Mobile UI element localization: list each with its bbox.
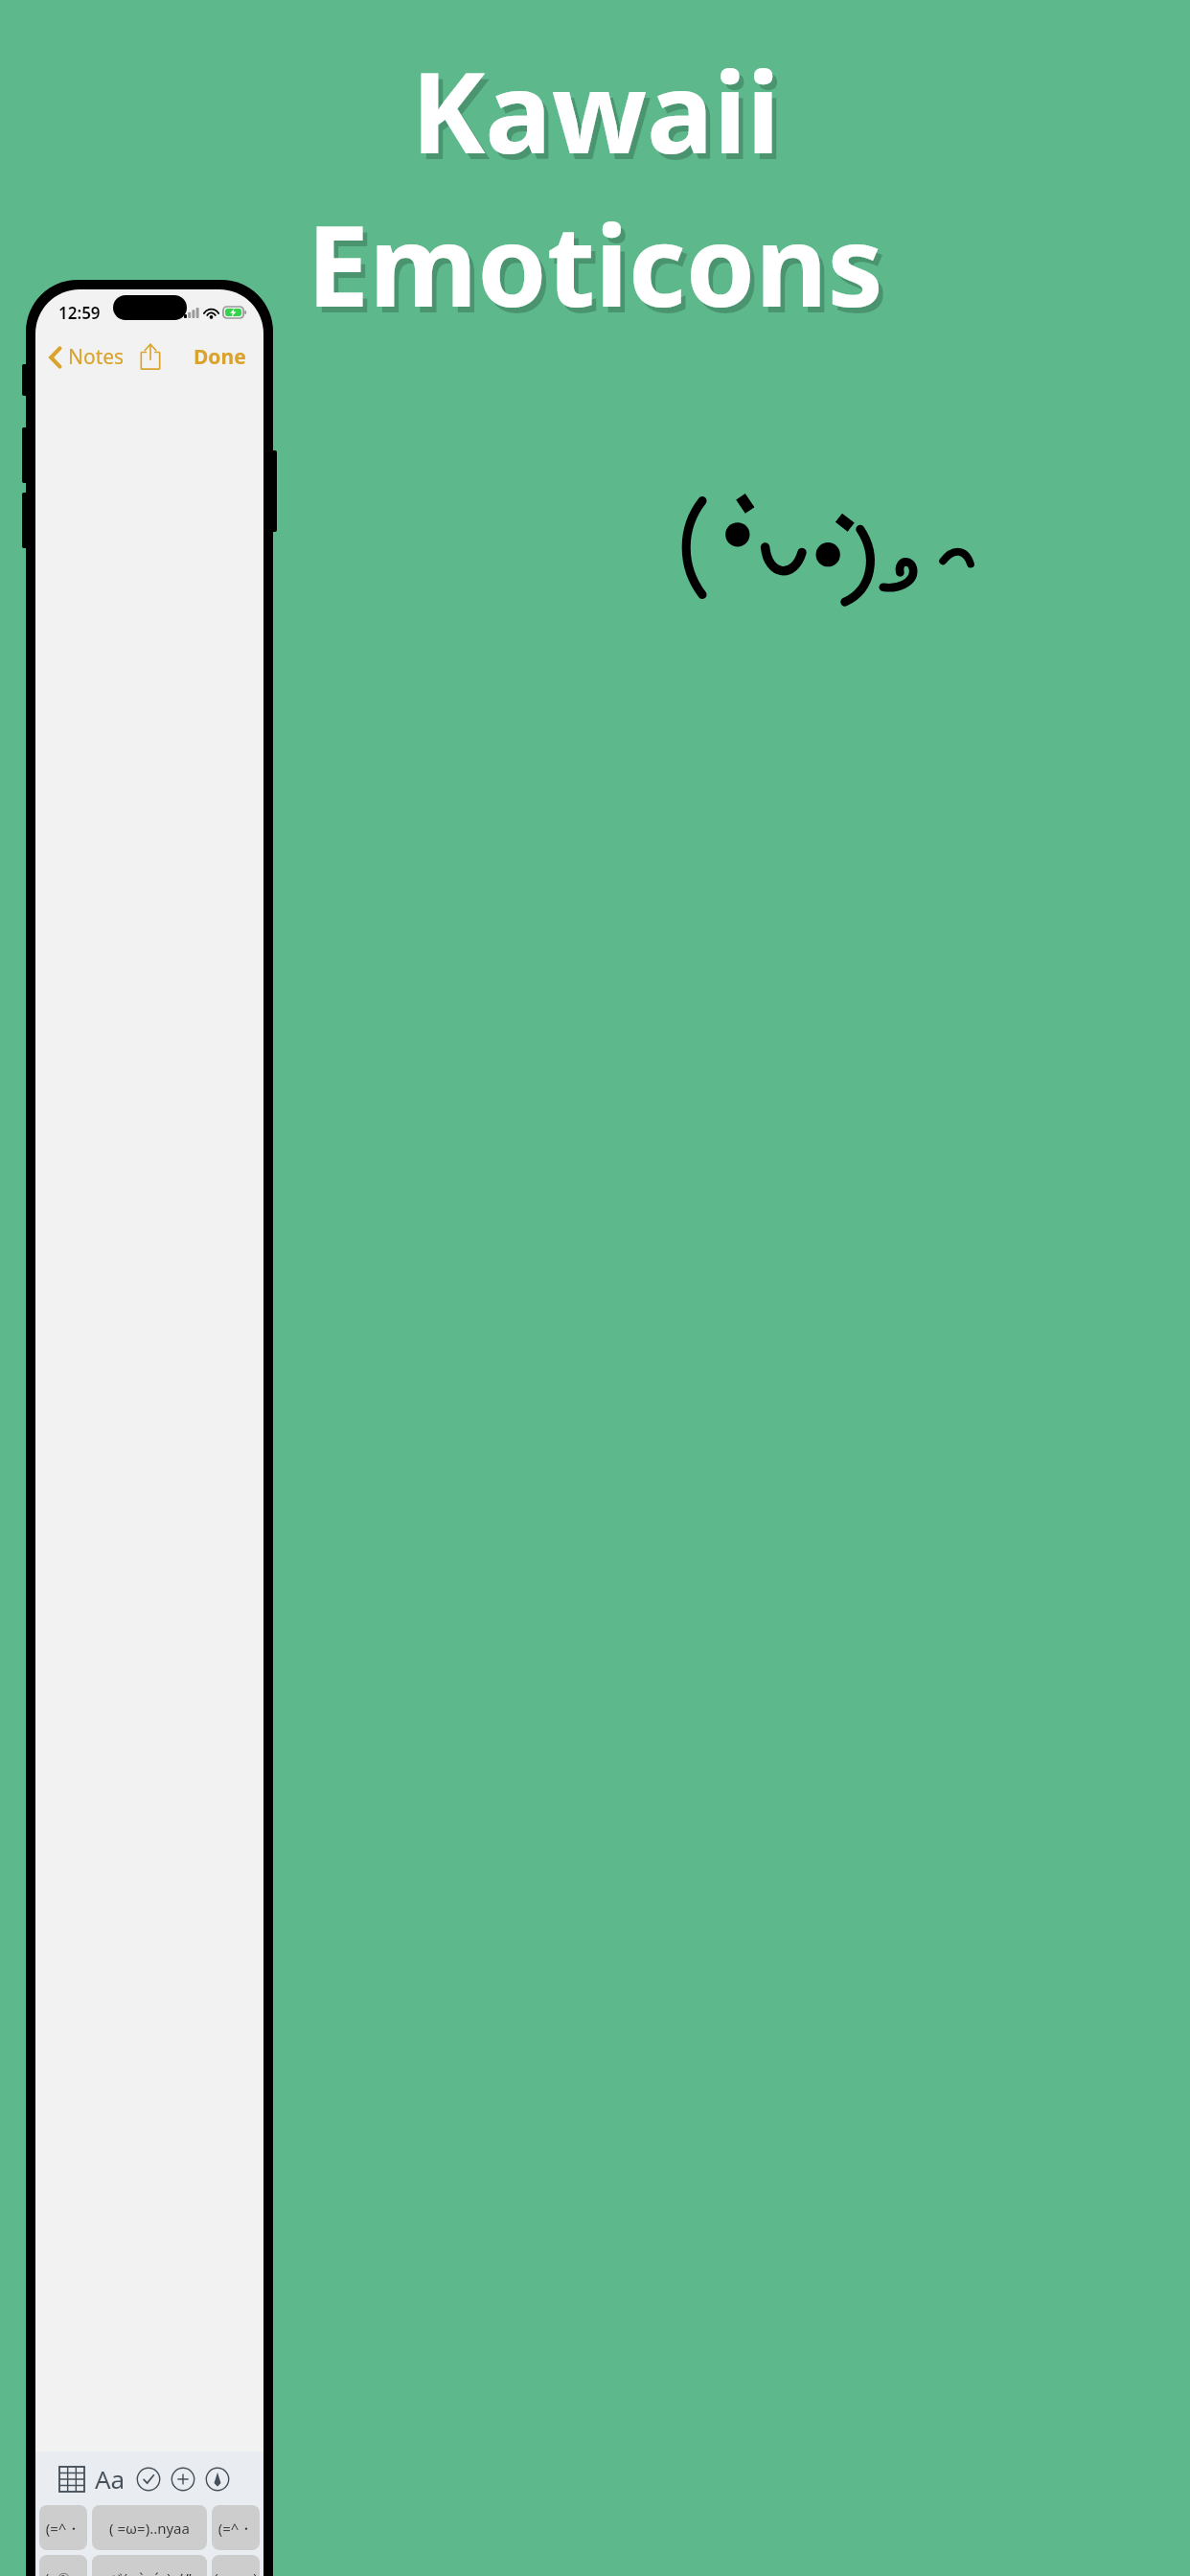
button[interactable]: ( =ω=)..nyaa: [92, 2505, 207, 2550]
staticText: (=^・ω・^=): [39, 2518, 87, 2538]
button[interactable]: Done: [190, 337, 250, 377]
staticText: Emoticons: [311, 194, 888, 345]
button[interactable]: Format: [89, 2456, 131, 2501]
staticText: 12:59: [58, 302, 101, 324]
button[interactable]: Table: [55, 2462, 89, 2496]
button[interactable]: Checklist: [131, 2462, 166, 2496]
staticText: ( =ω=)..nyaa: [109, 2518, 190, 2538]
staticText: Emoticons: [307, 188, 883, 339]
button[interactable]: Notes: [35, 337, 132, 377]
button[interactable]: ヾ(= `ω´=)ノ”: [92, 2555, 207, 2576]
button[interactable]: (=;ｪ; =): [212, 2555, 260, 2576]
button[interactable]: Add attachment: [166, 2462, 200, 2496]
button[interactable]: (=^・ｪ・^=): [212, 2505, 260, 2550]
staticText: (=;ｪ; =): [214, 2568, 258, 2576]
staticText: Notes: [68, 343, 125, 371]
staticText: ヾ(= `ω´=)ノ”: [108, 2568, 192, 2576]
button[interactable]: Share: [132, 335, 169, 378]
staticText: Kawaii: [411, 34, 780, 186]
staticText: (=^・ｪ・^=): [212, 2518, 260, 2538]
button[interactable]: Markup: [200, 2462, 235, 2496]
staticText: Kawaii: [416, 40, 785, 192]
button[interactable]: (=①ω①=): [39, 2555, 87, 2576]
staticText: Done: [194, 343, 246, 371]
staticText: (=①ω①=): [39, 2568, 87, 2576]
staticText: Aa: [95, 2462, 126, 2495]
button[interactable]: (=^・ω・^=): [39, 2505, 87, 2550]
